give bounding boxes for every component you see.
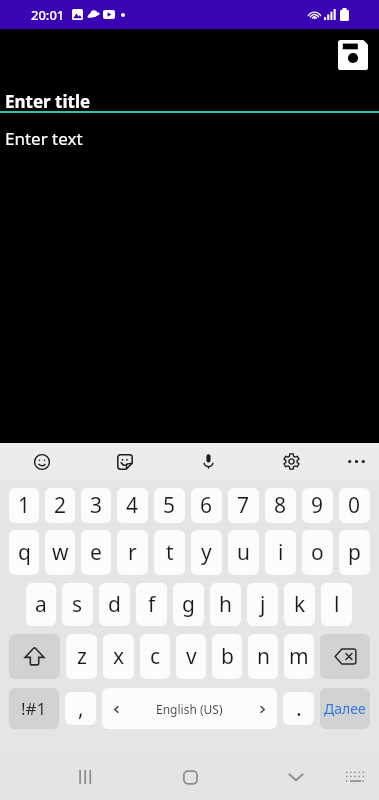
button[interactable]: v bbox=[176, 634, 206, 679]
button[interactable]: Recent apps bbox=[61, 754, 107, 800]
staticText: x bbox=[113, 642, 125, 671]
staticText: 8 bbox=[274, 491, 287, 520]
button[interactable]: 7 bbox=[228, 488, 259, 523]
button[interactable]: i bbox=[265, 530, 296, 575]
staticText: 0 bbox=[348, 491, 361, 520]
staticText: i bbox=[278, 538, 284, 567]
staticText: p bbox=[348, 538, 361, 567]
staticText: o bbox=[311, 538, 324, 567]
staticText: English (US) bbox=[156, 701, 223, 717]
button[interactable]: !#1 bbox=[9, 688, 59, 729]
button[interactable]: z bbox=[66, 634, 97, 679]
staticText: 1 bbox=[18, 491, 31, 520]
staticText: e bbox=[90, 538, 102, 567]
button[interactable]: x bbox=[103, 634, 134, 679]
staticText: n bbox=[257, 642, 270, 671]
button[interactable]: c bbox=[140, 634, 170, 679]
button[interactable]: 4 bbox=[117, 488, 148, 523]
button[interactable]: Backspace bbox=[320, 634, 370, 679]
button[interactable]: a bbox=[26, 583, 56, 626]
button[interactable]: 2 bbox=[45, 488, 75, 523]
button[interactable]: Voice input bbox=[189, 443, 227, 480]
button[interactable]: r bbox=[117, 530, 148, 575]
staticText: 5 bbox=[163, 491, 176, 520]
staticText: 9 bbox=[311, 491, 324, 520]
button[interactable]: d bbox=[99, 583, 130, 626]
button[interactable]: 5 bbox=[154, 488, 185, 523]
staticText: y bbox=[201, 538, 212, 567]
button[interactable]: Shift bbox=[9, 634, 60, 679]
staticText: j bbox=[260, 590, 266, 619]
staticText: Далее bbox=[324, 699, 366, 718]
staticText: t bbox=[166, 538, 174, 567]
button[interactable]: f bbox=[136, 583, 167, 626]
staticText: 20:01 bbox=[31, 6, 65, 24]
button[interactable]: o bbox=[302, 530, 333, 575]
button[interactable]: u bbox=[228, 530, 259, 575]
staticText: , bbox=[78, 694, 84, 723]
button[interactable]: Save note bbox=[329, 31, 377, 79]
button[interactable]: m bbox=[284, 634, 314, 679]
button[interactable]: Hide keyboard bbox=[273, 754, 319, 800]
button[interactable]: k bbox=[284, 583, 315, 626]
staticText: 6 bbox=[200, 491, 213, 520]
staticText: z bbox=[77, 642, 87, 671]
button[interactable]: p bbox=[339, 530, 370, 575]
staticText: v bbox=[186, 642, 197, 671]
button[interactable]: q bbox=[9, 530, 39, 575]
button[interactable]: , bbox=[65, 692, 96, 725]
staticText: 4 bbox=[126, 491, 139, 520]
button[interactable]: s bbox=[62, 583, 93, 626]
staticText: !#1 bbox=[21, 697, 47, 720]
staticText: . bbox=[296, 694, 302, 723]
staticText: s bbox=[72, 590, 83, 619]
button[interactable]: l bbox=[321, 583, 352, 626]
button[interactable]: More options bbox=[337, 443, 375, 480]
button[interactable]: e bbox=[81, 530, 111, 575]
button[interactable]: y bbox=[191, 530, 222, 575]
staticText: r bbox=[128, 538, 137, 567]
staticText: f bbox=[148, 590, 156, 619]
staticText: 7 bbox=[237, 491, 250, 520]
button[interactable]: h bbox=[210, 583, 241, 626]
staticText: q bbox=[18, 538, 31, 567]
button[interactable]: g bbox=[173, 583, 204, 626]
button[interactable]: Далее bbox=[320, 688, 370, 729]
staticText: Enter title bbox=[5, 90, 91, 113]
button[interactable]: 1 bbox=[9, 488, 39, 523]
button[interactable]: English (US) bbox=[102, 688, 277, 729]
button[interactable]: j bbox=[247, 583, 278, 626]
button[interactable]: t bbox=[154, 530, 185, 575]
staticText: u bbox=[237, 538, 250, 567]
staticText: k bbox=[294, 590, 306, 619]
staticText: w bbox=[52, 538, 69, 567]
staticText: h bbox=[219, 590, 232, 619]
button[interactable]: Keyboard settings bbox=[272, 443, 310, 480]
staticText: b bbox=[221, 642, 234, 671]
staticText: 2 bbox=[54, 491, 67, 520]
button[interactable]: n bbox=[248, 634, 278, 679]
button[interactable]: Emoji bbox=[23, 443, 61, 480]
staticText: Enter text bbox=[5, 127, 83, 150]
staticText: g bbox=[182, 590, 195, 619]
button[interactable]: Home bbox=[167, 754, 213, 800]
button[interactable]: 8 bbox=[265, 488, 296, 523]
staticText: a bbox=[35, 590, 47, 619]
staticText: l bbox=[334, 590, 340, 619]
button[interactable]: 9 bbox=[302, 488, 333, 523]
button[interactable]: Stickers bbox=[106, 443, 144, 480]
staticText: d bbox=[108, 590, 121, 619]
staticText: c bbox=[150, 642, 161, 671]
staticText: 3 bbox=[90, 491, 103, 520]
staticText: m bbox=[289, 642, 309, 671]
button[interactable]: . bbox=[283, 692, 314, 725]
button[interactable]: b bbox=[212, 634, 242, 679]
button[interactable]: 3 bbox=[81, 488, 111, 523]
button[interactable]: w bbox=[45, 530, 75, 575]
button[interactable]: 6 bbox=[191, 488, 222, 523]
button[interactable]: 0 bbox=[339, 488, 370, 523]
button[interactable]: Change keyboard bbox=[332, 754, 378, 800]
